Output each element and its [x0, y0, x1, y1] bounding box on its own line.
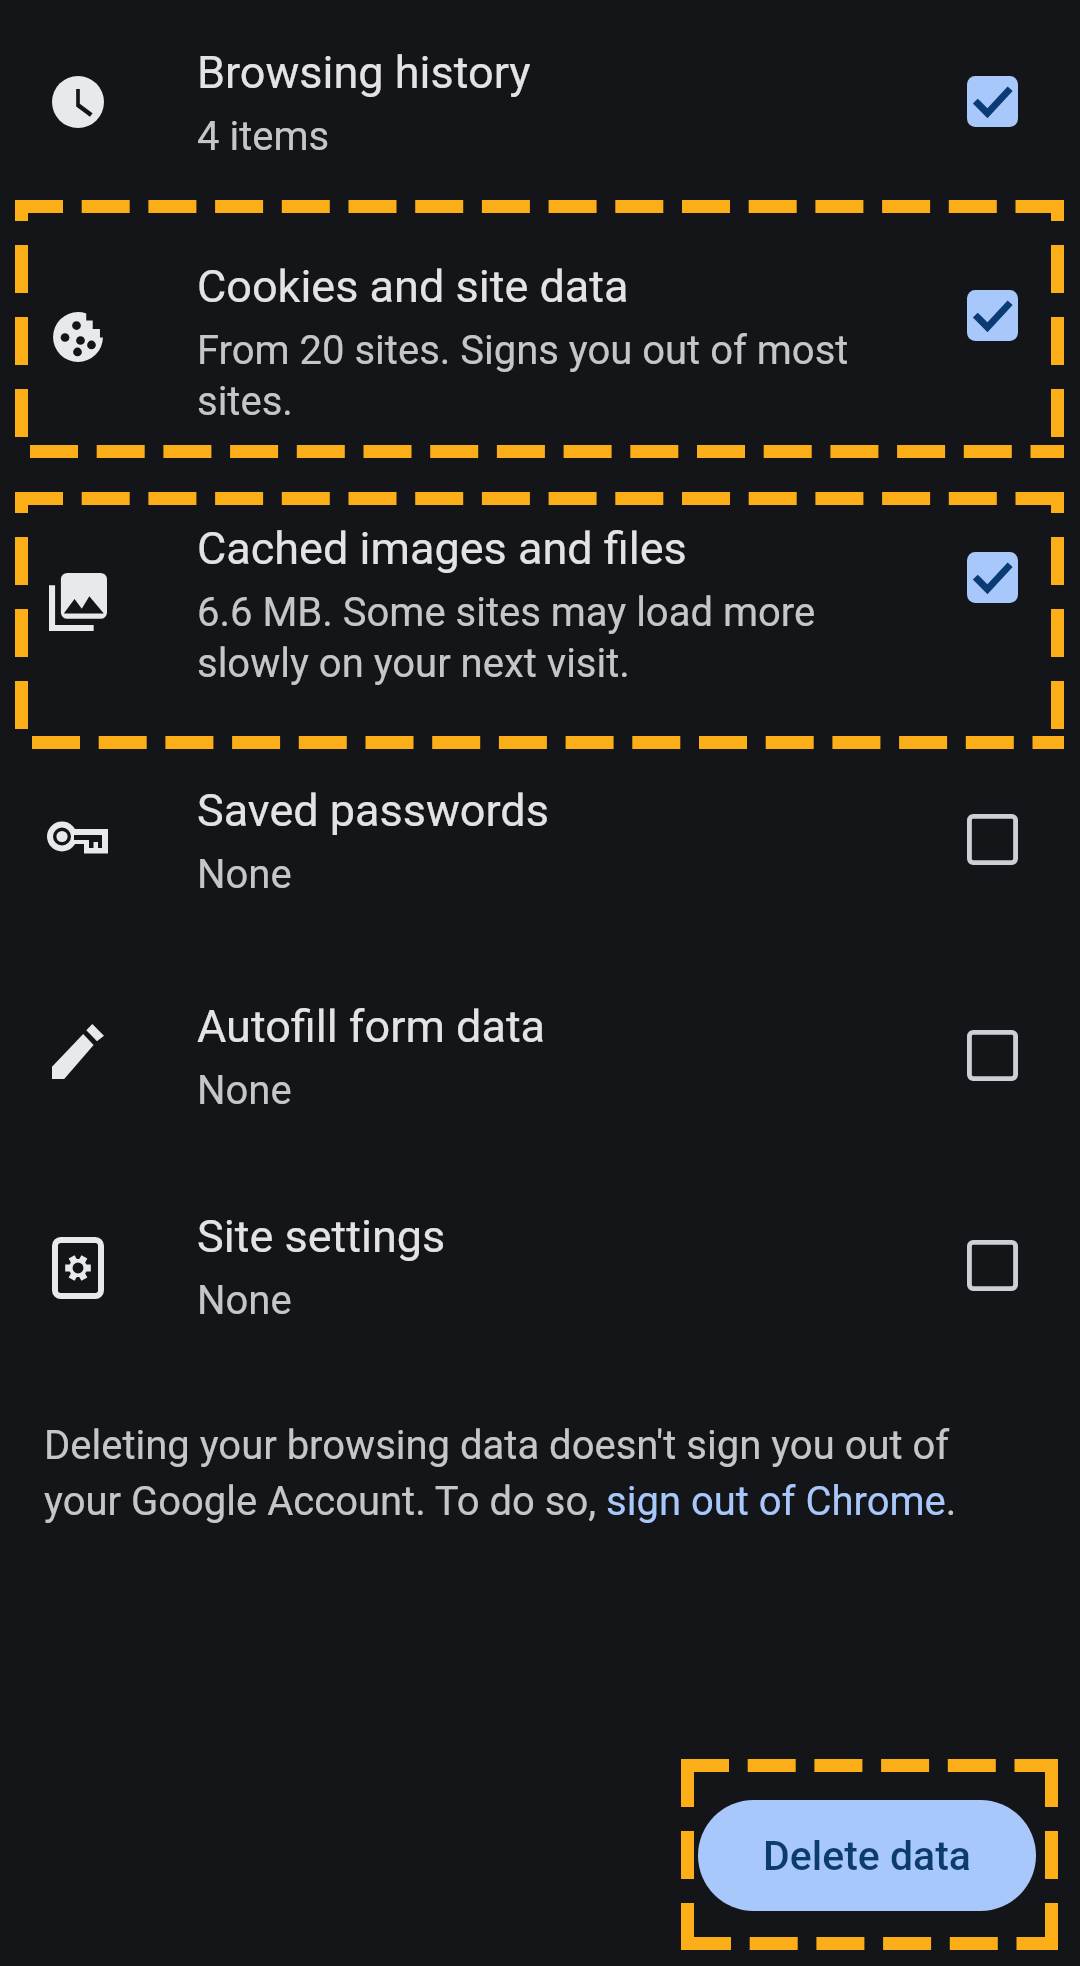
button[interactable]: Saved passwords: [0, 738, 1080, 950]
button[interactable]: Site settings: [0, 1164, 1080, 1376]
button[interactable]: Not selected: [967, 1030, 1018, 1081]
button[interactable]: Cached images and files: [0, 476, 1080, 688]
staticText: Browsing history: [197, 42, 531, 100]
other: Cookies and site data: [52, 311, 104, 363]
button[interactable]: Selected: [967, 290, 1018, 341]
other: Site settings: [52, 1237, 104, 1299]
staticText: Cookies and site data: [197, 256, 629, 314]
button[interactable]: Selected: [967, 552, 1018, 603]
staticText: None: [197, 848, 292, 899]
staticText: 4 items: [197, 110, 330, 161]
button[interactable]: Not selected: [967, 1240, 1018, 1291]
other: Cached images and files: [49, 573, 107, 631]
staticText: Delete data: [763, 1832, 971, 1880]
staticText: From 20 sites. Signs you out of most sit…: [197, 324, 849, 426]
button[interactable]: Not selected: [967, 814, 1018, 865]
staticText: Deleting your browsing data doesn't sign…: [44, 1415, 957, 1527]
staticText: Cached images and files: [197, 518, 687, 576]
staticText: Site settings: [197, 1206, 446, 1264]
other: Saved passwords: [47, 819, 108, 854]
button[interactable]: Browsing history: [0, 0, 1080, 212]
staticText: 6.6 MB. Some sites may load more slowly …: [197, 586, 816, 688]
staticText: Saved passwords: [197, 780, 549, 838]
button[interactable]: Delete data: [698, 1800, 1036, 1911]
staticText: None: [197, 1064, 292, 1115]
other: Autofill form data: [52, 1024, 104, 1079]
button[interactable]: Cookies and site data: [0, 214, 1080, 426]
button[interactable]: Autofill form data: [0, 954, 1080, 1166]
staticText: Autofill form data: [197, 996, 546, 1054]
staticText: None: [197, 1274, 292, 1325]
other: Browsing history: [52, 76, 104, 128]
button[interactable]: Selected: [967, 76, 1018, 127]
